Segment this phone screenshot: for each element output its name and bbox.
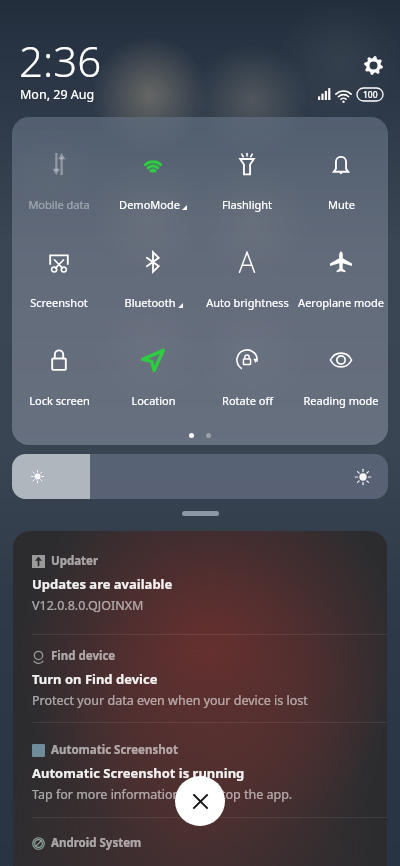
button[interactable]: Flashlight	[200, 153, 294, 205]
button[interactable]: Reading mode	[294, 349, 388, 401]
button[interactable]: Aeroplane mode	[294, 251, 388, 303]
staticText: Bluetooth	[124, 295, 176, 310]
staticText: Aeroplane mode	[298, 295, 384, 310]
staticText: Android System	[51, 835, 142, 851]
button[interactable]: Android System	[13, 813, 387, 866]
button[interactable]: Automatic Screenshot	[13, 720, 387, 817]
button[interactable]: Mute	[294, 153, 388, 205]
staticText: Updater	[51, 553, 99, 569]
button[interactable]: Settings	[359, 51, 387, 79]
staticText: Screenshot	[30, 295, 88, 310]
staticText: Updates are available	[32, 575, 173, 593]
staticText: DemoMode	[119, 197, 180, 212]
button[interactable]: Close	[175, 776, 225, 826]
staticText: Protect your data even when your device …	[32, 692, 308, 709]
button[interactable]: Auto brightness	[200, 251, 294, 303]
staticText: Rotate off	[222, 393, 273, 408]
staticText: 100	[363, 89, 378, 101]
staticText: Auto brightness	[206, 295, 289, 310]
button[interactable]: Find device	[13, 626, 387, 722]
staticText: V12.0.8.0.QJOINXM	[32, 597, 144, 614]
button[interactable]: Updater	[13, 531, 387, 634]
staticText: Find device	[51, 648, 116, 664]
staticText: Mon, 29 Aug	[20, 86, 95, 103]
button[interactable]: Lock screen	[12, 349, 106, 401]
staticText: Mute	[328, 197, 355, 212]
staticText: Location	[131, 393, 176, 408]
staticText: Mobile data	[28, 197, 90, 212]
staticText: Tap for more information or to stop the …	[32, 786, 293, 803]
button[interactable]: Rotate off	[200, 349, 294, 401]
button[interactable]: Location	[106, 349, 200, 401]
staticText: Automatic Screenshot is running	[32, 764, 245, 782]
staticText: Automatic Screenshot	[51, 742, 178, 758]
staticText: 2:36	[19, 32, 102, 89]
button[interactable]: Screenshot	[12, 251, 106, 303]
button[interactable]: Mobile data	[12, 153, 106, 205]
staticText: Flashlight	[222, 197, 272, 212]
button[interactable]: Bluetooth	[106, 251, 200, 303]
button[interactable]: Brightness	[12, 454, 388, 499]
staticText: Lock screen	[29, 393, 90, 408]
staticText: Reading mode	[303, 393, 379, 408]
button[interactable]: DemoMode	[106, 153, 200, 205]
staticText: Turn on Find device	[32, 670, 158, 688]
